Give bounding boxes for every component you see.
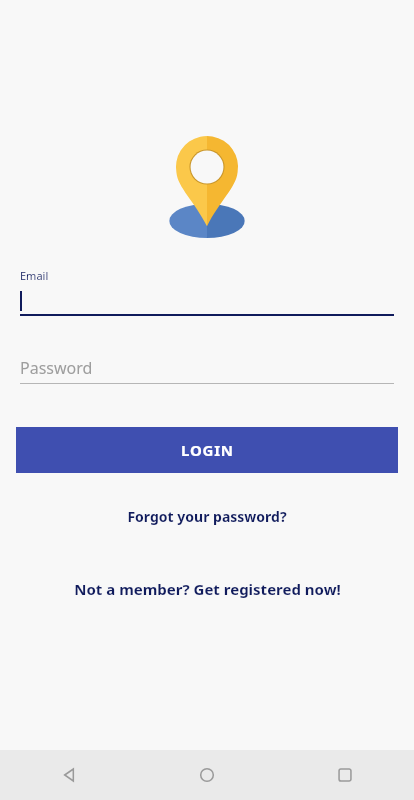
button[interactable]: Not a member? Get registered now! bbox=[62, 575, 353, 603]
button[interactable]: Forgot your password? bbox=[115, 503, 299, 530]
button[interactable]: Password bbox=[20, 356, 394, 384]
staticText: Forgot your password? bbox=[127, 507, 287, 526]
staticText: Email bbox=[20, 268, 49, 283]
staticText: Not a member? Get registered now! bbox=[74, 579, 341, 599]
staticText: LOGIN bbox=[181, 440, 234, 460]
button[interactable]: LOGIN bbox=[16, 427, 398, 473]
button[interactable]: Recent apps bbox=[276, 750, 414, 800]
button[interactable]: Home bbox=[138, 750, 276, 800]
staticText: Password bbox=[20, 357, 93, 379]
button[interactable]: Email bbox=[20, 268, 394, 316]
button[interactable]: Back bbox=[0, 750, 138, 800]
